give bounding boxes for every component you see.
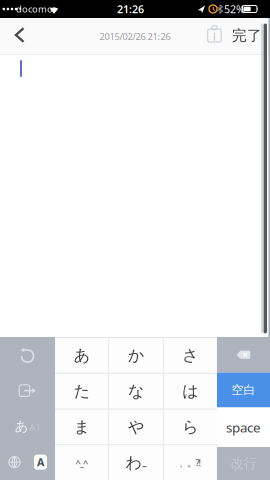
staticText: space <box>226 418 261 436</box>
staticText: や <box>128 417 144 437</box>
staticText: わ <box>125 453 141 472</box>
staticText: 52% <box>224 2 245 16</box>
staticText: さ <box>182 345 198 365</box>
button[interactable]: さ <box>164 338 217 373</box>
button[interactable]: 完了 <box>228 20 266 50</box>
button[interactable]: Undo <box>0 337 55 373</box>
staticText: 21:26 <box>117 2 144 16</box>
staticText: か <box>128 345 144 365</box>
button[interactable]: は <box>164 374 217 409</box>
button[interactable]: あ <box>55 338 108 373</box>
button[interactable]: space <box>217 407 270 447</box>
button[interactable]: Next keyboard <box>8 456 21 469</box>
button[interactable]: Paste <box>202 21 226 48</box>
button[interactable]: Keyboard app <box>34 455 47 470</box>
button[interactable]: ま <box>55 409 108 444</box>
button[interactable]: な <box>109 374 163 409</box>
staticText: 2015/02/26 21:26 <box>99 30 170 43</box>
button[interactable]: Delete <box>217 337 270 372</box>
button[interactable]: 空白 <box>217 372 270 407</box>
button[interactable]: 、。?! <box>164 445 217 480</box>
staticText: 完了 <box>232 26 262 44</box>
staticText: な <box>128 381 144 401</box>
button[interactable]: Input mode <box>0 408 55 444</box>
staticText: ら <box>182 417 198 437</box>
staticText: 改行 <box>230 455 256 472</box>
staticText: 空白 <box>231 383 255 397</box>
button[interactable]: や <box>109 409 163 444</box>
button[interactable]: Cursor right <box>0 373 55 409</box>
staticText: は <box>182 381 198 401</box>
staticText: 、。?! <box>179 456 202 469</box>
button[interactable]: ら <box>164 409 217 444</box>
staticText: ま <box>74 417 90 437</box>
staticText: た <box>74 381 90 401</box>
staticText: ^_^ <box>75 456 88 469</box>
staticText: あ <box>74 345 90 365</box>
button[interactable]: 改行 <box>217 447 270 480</box>
staticText: docomo <box>16 3 53 15</box>
staticText: あ <box>15 418 29 435</box>
button[interactable]: Back <box>7 21 32 49</box>
button[interactable]: ^_^ <box>55 445 108 480</box>
button[interactable]: た <box>55 374 108 409</box>
button[interactable]: わ <box>109 445 163 480</box>
staticText: A1 <box>29 421 40 434</box>
staticText: A <box>37 455 44 469</box>
button[interactable]: か <box>109 338 163 373</box>
